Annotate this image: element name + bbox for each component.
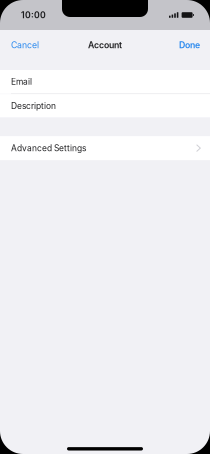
- staticText: Account: [88, 40, 122, 50]
- staticText: Advanced Settings: [11, 143, 86, 153]
- staticText: 10:00: [21, 10, 46, 20]
- staticText: Cancel: [11, 40, 39, 50]
- button[interactable]: Done: [171, 30, 210, 56]
- button[interactable]: Advanced Settings: [0, 136, 210, 160]
- button[interactable]: Description: [0, 94, 210, 118]
- button[interactable]: Email: [0, 70, 210, 93]
- staticText: Email: [11, 77, 32, 87]
- staticText: Done: [179, 40, 200, 50]
- button[interactable]: Cancel: [0, 30, 47, 56]
- staticText: Description: [11, 101, 56, 111]
